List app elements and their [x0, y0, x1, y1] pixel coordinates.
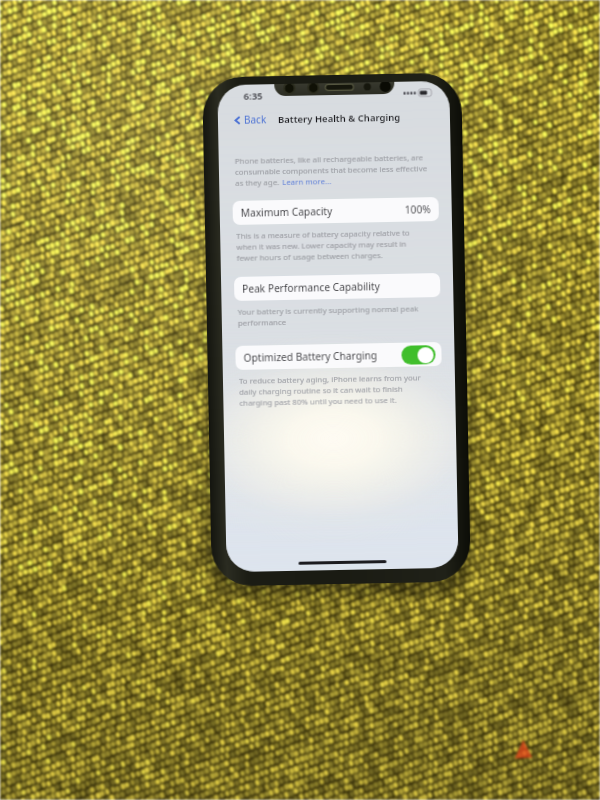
staticText: Battery Health & Charging [278, 111, 401, 126]
staticText: Maximum Capacity [241, 204, 333, 220]
staticText: To reduce battery aging, iPhone learns f… [239, 372, 421, 387]
staticText: Peak Performance Capability [242, 279, 380, 296]
staticText: Phone batteries, like all rechargeable b… [235, 152, 424, 167]
button[interactable]: Peak Performance Capability [234, 273, 440, 301]
staticText: when it was new. Lower capacity may resu… [236, 239, 406, 253]
staticText: This is a measure of battery capacity re… [236, 228, 410, 242]
button[interactable]: Optimized Battery Charging toggle [401, 345, 436, 365]
staticText: 6:35 [243, 89, 264, 103]
staticText: performance [238, 317, 287, 329]
button[interactable]: Learn more… [282, 176, 332, 188]
staticText: Optimized Battery Charging [243, 348, 378, 365]
button[interactable]: Maximum Capacity [232, 197, 439, 225]
staticText: fewer hours of usage between charges. [236, 250, 384, 264]
staticText: 100% [405, 202, 431, 217]
staticText: consumable components that become less e… [235, 163, 428, 178]
staticText: Back [244, 112, 267, 127]
staticText: charging past 80% until you need to use … [239, 395, 397, 409]
staticText: daily charging routine so it can wait to… [239, 384, 403, 398]
button[interactable]: Back [232, 112, 267, 127]
staticText: Your battery is currently supporting nor… [237, 303, 419, 318]
button[interactable]: Optimized Battery Charging [235, 342, 442, 370]
staticText: as they age. [235, 177, 282, 189]
